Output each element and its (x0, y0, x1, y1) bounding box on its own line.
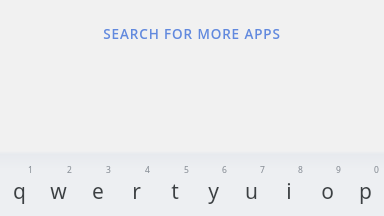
staticText: 3 (106, 164, 111, 176)
staticText: 1 (28, 164, 33, 176)
staticText: 8 (298, 164, 303, 176)
staticText: 5 (184, 164, 189, 176)
staticText: u (245, 177, 258, 206)
staticText: 4 (145, 164, 150, 176)
staticText: e (92, 177, 104, 206)
button[interactable]: SEARCH FOR MORE APPS (93, 21, 291, 47)
button[interactable]: 6 (194, 154, 232, 216)
button[interactable]: 3 (78, 154, 117, 216)
staticText: 0 (374, 164, 379, 176)
staticText: 9 (336, 164, 341, 176)
staticText: SEARCH FOR MORE APPS (103, 25, 281, 43)
staticText: i (286, 177, 292, 206)
button[interactable]: 9 (308, 154, 346, 216)
staticText: q (13, 177, 26, 206)
staticText: 2 (67, 164, 72, 176)
staticText: y (208, 177, 219, 206)
staticText: o (321, 177, 334, 206)
staticText: w (50, 177, 67, 206)
staticText: 6 (222, 164, 227, 176)
button[interactable]: 8 (270, 154, 308, 216)
button[interactable]: 4 (117, 154, 156, 216)
staticText: 7 (260, 164, 265, 176)
button[interactable]: 5 (156, 154, 194, 216)
button[interactable]: 0 (346, 154, 384, 216)
button[interactable]: 7 (232, 154, 270, 216)
button[interactable]: 2 (39, 154, 78, 216)
staticText: t (171, 177, 179, 206)
staticText: p (359, 177, 372, 206)
button[interactable]: 1 (0, 154, 39, 216)
staticText: r (132, 177, 141, 206)
